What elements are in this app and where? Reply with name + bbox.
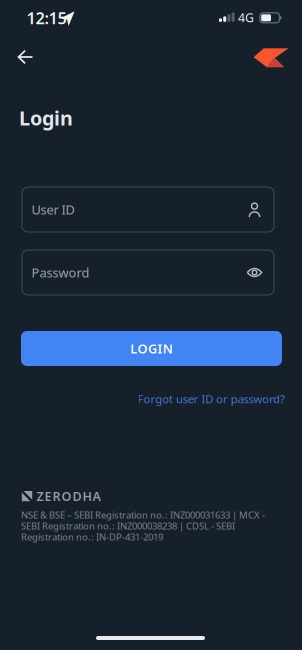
button[interactable]: Password xyxy=(22,250,274,295)
staticText: User ID xyxy=(31,201,74,218)
staticText: LOGIN xyxy=(130,340,173,357)
staticText: Password xyxy=(31,264,89,281)
button[interactable] xyxy=(252,46,290,68)
button[interactable]: LOGIN xyxy=(21,331,282,366)
staticText: NSE & BSE – SEBI Registration no.: INZ00… xyxy=(21,508,265,521)
button[interactable] xyxy=(11,43,39,71)
staticText: Login xyxy=(19,104,73,131)
staticText: Z E R O D H A xyxy=(36,488,100,505)
staticText: 4G xyxy=(238,9,254,26)
staticText: Registration no.: IN-DP-431-2019 xyxy=(21,530,163,543)
staticText: 12:15 xyxy=(26,7,66,29)
button[interactable]: User ID xyxy=(22,187,274,232)
staticText: SEBI Registration no.: INZ000038238 | CD… xyxy=(21,519,235,532)
staticText: Forgot user ID or password? xyxy=(138,391,285,406)
button[interactable]: Forgot user ID or password? xyxy=(138,391,285,406)
